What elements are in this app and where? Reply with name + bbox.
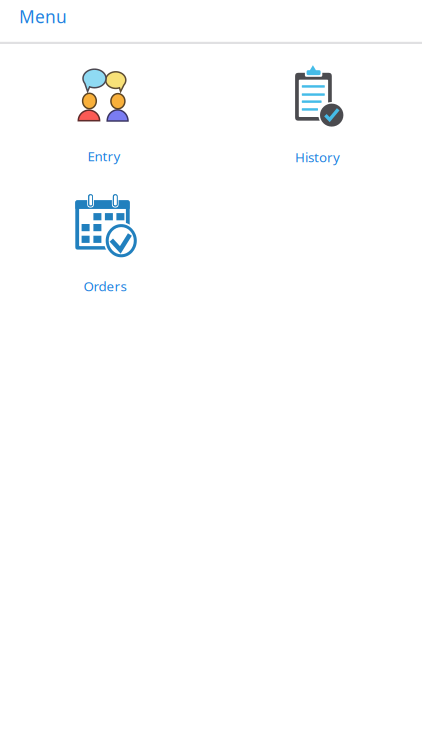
- button[interactable]: Orders: [0, 190, 211, 336]
- button[interactable]: History: [211, 44, 422, 190]
- staticText: Entry: [87, 147, 120, 165]
- staticText: Orders: [83, 277, 126, 295]
- button[interactable]: Entry: [0, 44, 211, 190]
- staticText: History: [295, 148, 340, 166]
- staticText: Menu: [19, 5, 67, 28]
